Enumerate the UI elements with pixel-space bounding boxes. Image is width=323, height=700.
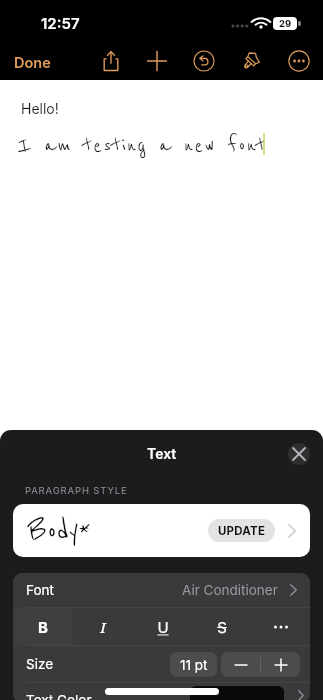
button[interactable]: More options	[278, 41, 320, 81]
staticText: U	[157, 618, 169, 636]
staticText: B	[38, 618, 48, 636]
button[interactable]: 11 pt	[170, 652, 217, 677]
staticText: UPDATE	[218, 524, 266, 538]
button[interactable]: More text styles	[251, 608, 310, 645]
staticText: Body*	[28, 514, 208, 548]
button[interactable]: B	[13, 608, 73, 645]
staticText: I am testing a new font	[18, 133, 267, 158]
staticText: Size	[26, 656, 170, 672]
button[interactable]: Close	[288, 443, 310, 465]
button[interactable]: Undo	[183, 41, 225, 81]
staticText: Text	[147, 445, 177, 462]
staticText: 12:57	[41, 14, 80, 32]
button[interactable]: Increase size	[261, 652, 300, 677]
button[interactable]: Font	[13, 573, 310, 607]
button[interactable]: Done	[8, 50, 57, 76]
button[interactable]: Body*	[13, 504, 310, 557]
staticText: Done	[14, 54, 51, 72]
button[interactable]: Insert	[136, 41, 178, 81]
button[interactable]: S	[192, 608, 251, 645]
staticText: S	[217, 618, 227, 636]
staticText: 29	[279, 18, 292, 29]
staticText: 11 pt	[180, 657, 208, 673]
button[interactable]: U	[133, 608, 192, 645]
staticText: I	[100, 617, 106, 637]
button[interactable]: Share	[90, 41, 132, 81]
button[interactable]: Markup	[230, 41, 272, 81]
staticText: Air Conditioner	[182, 582, 278, 598]
button[interactable]: I	[73, 608, 133, 645]
staticText: PARAGRAPH STYLE	[25, 485, 128, 496]
button[interactable]: Decrease size	[221, 652, 260, 677]
staticText: Font	[26, 582, 182, 598]
button[interactable]: Text Color	[13, 683, 310, 700]
staticText: Hello!	[21, 100, 59, 117]
staticText: Text Color	[26, 692, 92, 700]
